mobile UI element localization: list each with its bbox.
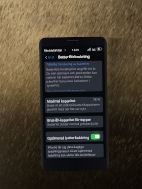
button[interactable]: Tillfällig minskning av batteriet — [44, 60, 103, 92]
staticText: Batteriförbrukning — [58, 54, 90, 59]
staticText: Batteriet stöder normal prestanda för to… — [47, 121, 101, 127]
button[interactable]: Maximal kapacitet — [45, 96, 103, 113]
button[interactable]: Back — [44, 52, 102, 60]
other: Back — [44, 55, 48, 59]
staticText: 78 % — [93, 97, 101, 102]
button[interactable]: Brus-ID-kapacitet för toppar — [45, 115, 103, 128]
staticText: Batteriets livslängd är ungefär tre år. … — [46, 66, 101, 87]
staticText: Mer om prestandahantering — [47, 89, 86, 91]
staticText: iPhone lär sig dina dagliga laddningsvan… — [48, 144, 102, 157]
staticText: Brus-ID-kapacitet för toppar — [47, 117, 91, 121]
staticText: 14:21 — [72, 48, 80, 52]
staticText: Maximal kapacitet — [47, 98, 76, 102]
button[interactable]: Optimerad batteriladdning på — [90, 133, 101, 140]
staticText: Detta är ett mått på batterikapaciteten … — [47, 102, 101, 111]
staticText: Meddelanden — [44, 48, 63, 52]
staticText: Tillfällig minskning av batteriet — [46, 62, 89, 66]
staticText: Optimerad batteriladdning — [47, 135, 90, 139]
staticText: Inst. — [48, 54, 56, 59]
button[interactable]: Optimerad batteriladdning — [45, 130, 104, 142]
staticText: 5G — [92, 48, 96, 52]
